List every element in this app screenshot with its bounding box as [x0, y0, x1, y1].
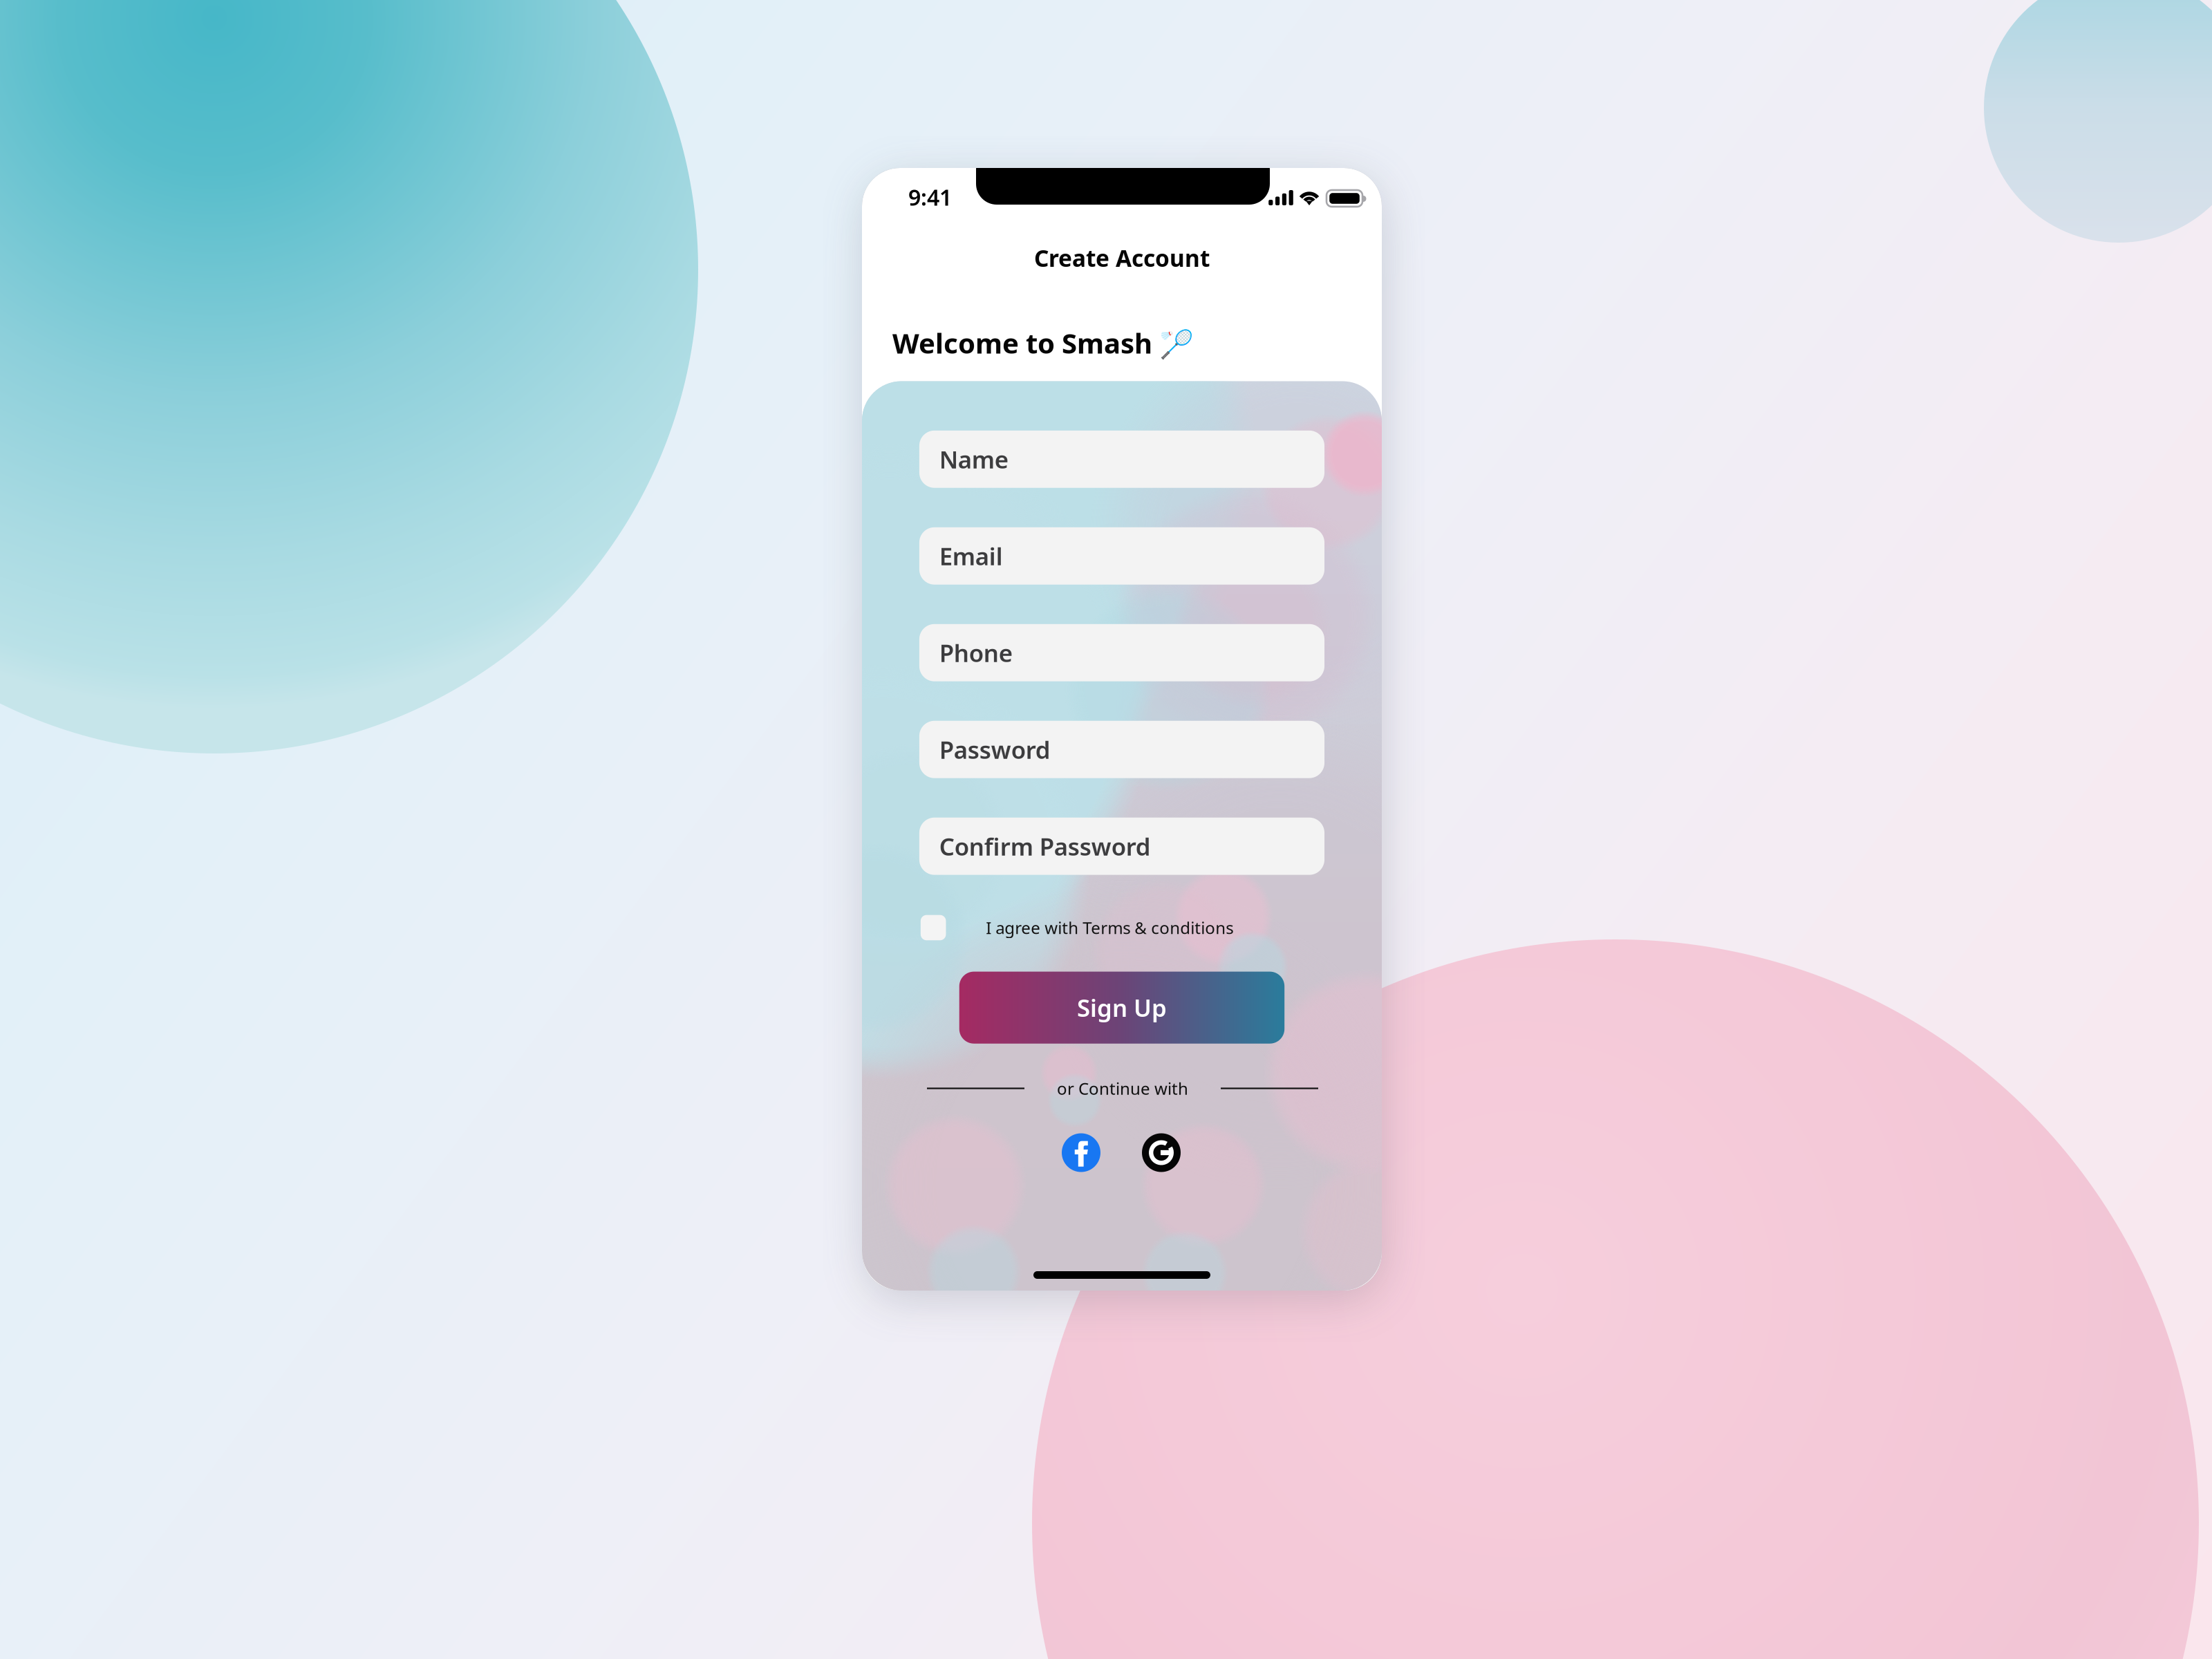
button[interactable]: I agree with Terms & conditions [921, 915, 1320, 940]
staticText: 9:41 [908, 182, 952, 212]
staticText: Name [939, 443, 1008, 475]
staticText: Password [939, 734, 1051, 765]
button[interactable]: Email [919, 527, 1324, 585]
button[interactable]: Password [919, 721, 1324, 778]
staticText: Welcome to Smash 🏸 [892, 324, 1194, 361]
button[interactable]: Phone [919, 624, 1324, 681]
staticText: or Continue with [1057, 1077, 1188, 1099]
staticText: Sign Up [1077, 992, 1167, 1023]
button[interactable]: Name [919, 431, 1324, 488]
button[interactable]: Sign Up [959, 972, 1284, 1044]
staticText: I agree with Terms & conditions [986, 917, 1233, 939]
staticText: Phone [939, 637, 1013, 669]
staticText: Email [939, 540, 1003, 572]
button[interactable]: Continue with Facebook [1062, 1133, 1100, 1172]
button[interactable]: Confirm Password [919, 818, 1324, 875]
button[interactable]: Continue with Google [1142, 1133, 1181, 1172]
staticText: Confirm Password [939, 830, 1151, 862]
staticText: Create Account [1034, 243, 1210, 273]
